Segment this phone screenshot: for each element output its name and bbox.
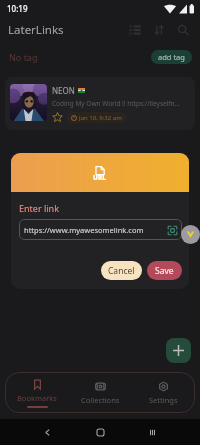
staticText: 10:19: [7, 3, 28, 14]
staticText: Collections: [81, 395, 120, 405]
staticText: Settings: [149, 395, 178, 405]
button[interactable]: Scan QR code: [165, 223, 179, 237]
button[interactable]: Save: [147, 261, 182, 280]
button[interactable]: Filter by tag: [123, 18, 147, 42]
button[interactable]: Settings: [132, 372, 195, 413]
button[interactable]: Cancel: [101, 261, 142, 280]
staticText: Save: [155, 265, 174, 277]
staticText: https://www.myawesomelink.com: [24, 225, 144, 235]
staticText: Jan 10, 9:32 am: [79, 114, 122, 122]
button[interactable]: Sort: [147, 18, 171, 42]
button[interactable]: Add link: [166, 338, 191, 363]
staticText: Bookmarks: [17, 393, 57, 403]
staticText: URL: [93, 173, 107, 182]
staticText: No tag: [9, 51, 38, 63]
button[interactable]: add tag: [151, 50, 192, 64]
button[interactable]: Collections: [69, 372, 132, 413]
staticText: LaterLinks: [8, 22, 64, 38]
staticText: Cancel: [108, 265, 135, 277]
button[interactable]: Autofill: [181, 225, 200, 244]
staticText: Enter link: [19, 202, 59, 214]
button[interactable]: NEON: [5, 77, 195, 130]
staticText: Coding My Own World !! https://lleyselfn…: [52, 99, 180, 108]
staticText: NEON: [52, 85, 75, 96]
button[interactable]: Search: [171, 18, 195, 42]
staticText: add tag: [158, 52, 185, 62]
button[interactable]: Bookmarks: [5, 372, 69, 413]
